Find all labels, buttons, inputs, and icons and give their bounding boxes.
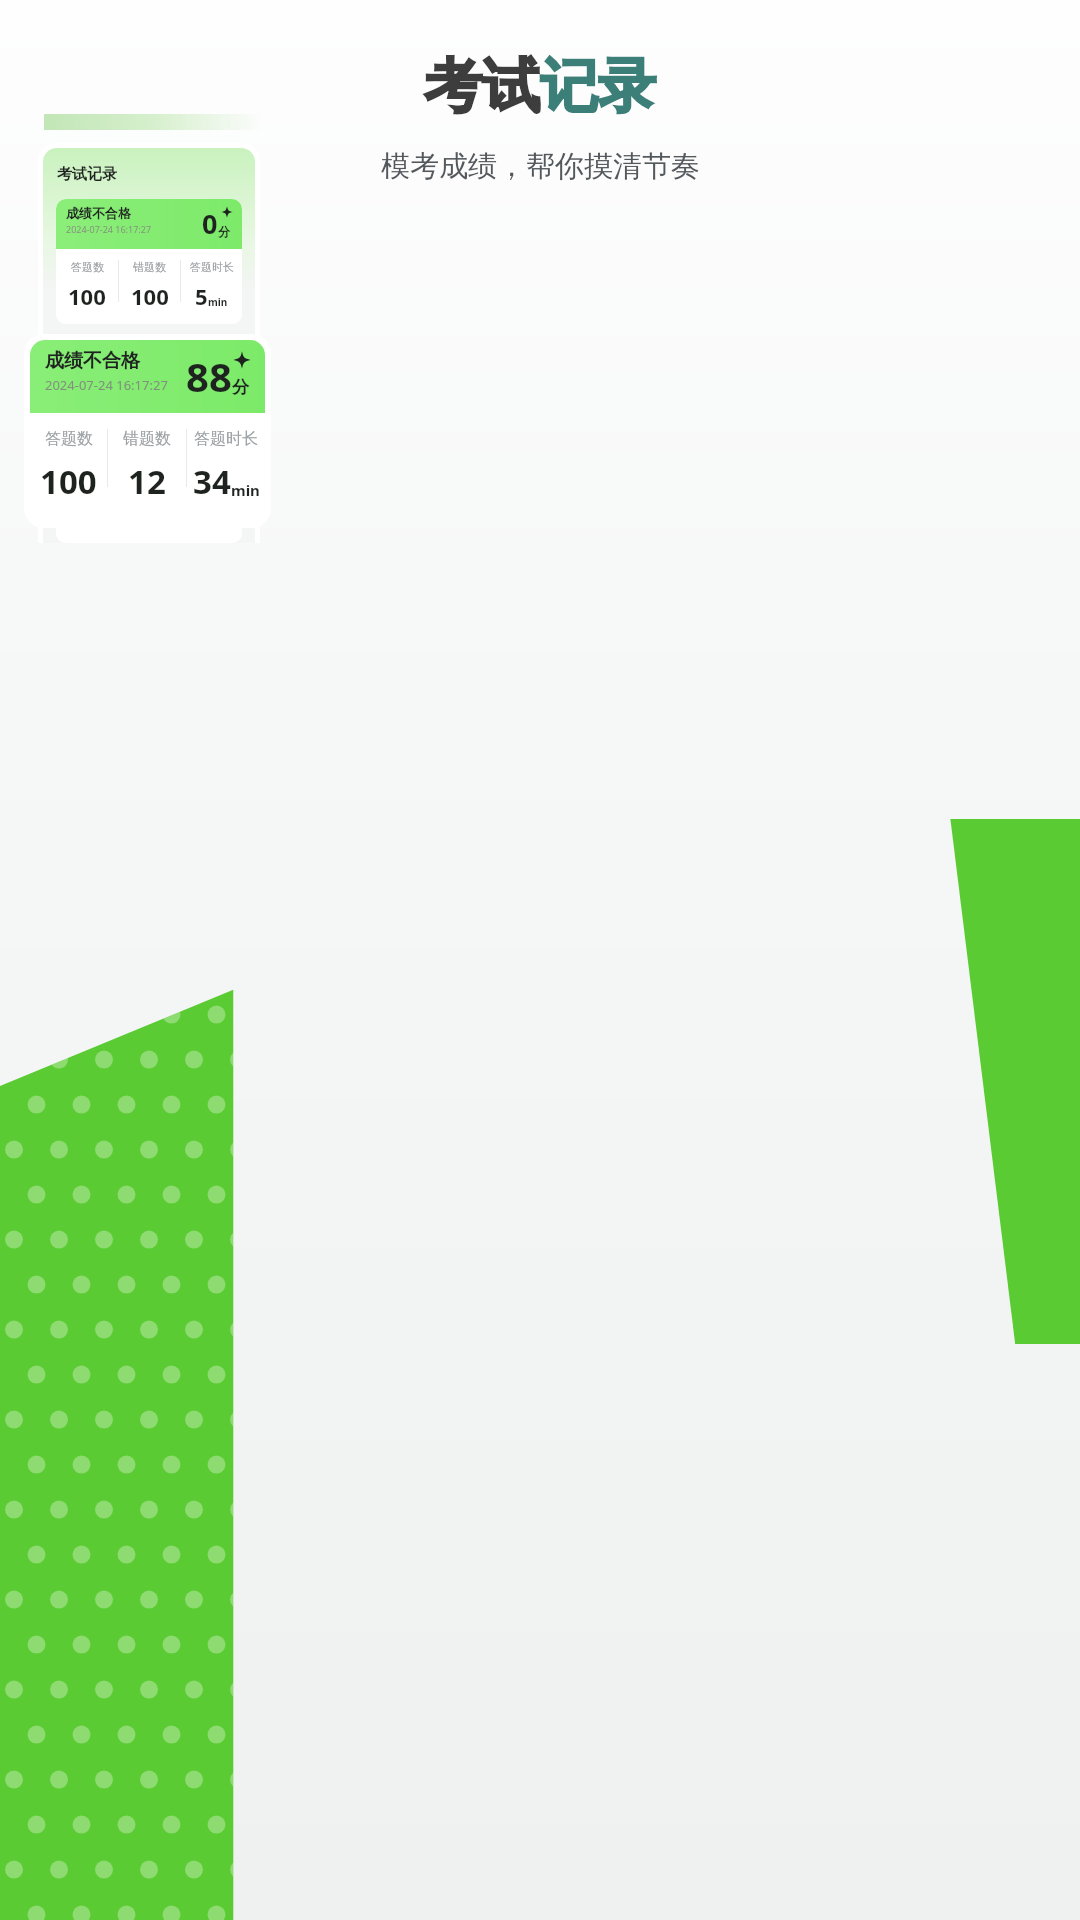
staticText: 成绩不合格 — [45, 349, 140, 373]
button[interactable]: 成绩不合格 — [56, 337, 242, 462]
staticText: 答题时长 — [190, 260, 234, 274]
staticText: 答题时长 — [194, 429, 258, 449]
staticText: 34 — [193, 459, 231, 504]
staticText: 考试 — [424, 50, 540, 123]
staticText: 考试记录 — [57, 165, 117, 184]
staticText: 成绩不合格 — [66, 343, 131, 359]
staticText: 0 — [202, 205, 218, 242]
staticText: 100 — [68, 281, 106, 311]
button[interactable]: 成绩不合格 — [56, 199, 242, 324]
staticText: 成绩不合格 — [66, 205, 131, 221]
staticText: 错题数 — [133, 260, 166, 274]
staticText: 100 — [131, 281, 169, 311]
staticText: 记录 — [540, 50, 656, 123]
staticText: 错题数 — [123, 429, 171, 449]
staticText: 分 — [218, 224, 230, 239]
staticText: 88 — [186, 349, 232, 403]
staticText: 100 — [40, 459, 97, 504]
staticText: 模考成绩，帮你摸清节奏 — [381, 148, 700, 185]
staticText: 100 — [68, 419, 106, 449]
staticText: 5 — [195, 281, 208, 311]
staticText: 45 — [187, 343, 218, 380]
staticText: 2024-07-24 16:17:27 — [66, 223, 152, 235]
staticText: min — [208, 433, 228, 447]
staticText: min — [231, 480, 260, 500]
staticText: 88 — [187, 481, 218, 518]
staticText: min — [208, 295, 228, 309]
staticText: 答题数 — [71, 260, 104, 274]
staticText: 2024-07-24 16:17:27 — [45, 376, 168, 394]
button[interactable]: 成绩不合格 — [30, 340, 265, 522]
staticText: 答题数 — [45, 429, 93, 449]
button[interactable]: 成绩不合格 — [56, 475, 242, 543]
staticText: 12 — [128, 459, 166, 504]
staticText: 分 — [218, 362, 230, 377]
staticText: 分 — [232, 377, 249, 398]
staticText: 成绩不合格 — [66, 481, 131, 497]
staticText: 100 — [131, 419, 169, 449]
staticText: 2024-07-24 16:17:27 — [66, 361, 152, 373]
staticText: 5 — [195, 419, 208, 449]
